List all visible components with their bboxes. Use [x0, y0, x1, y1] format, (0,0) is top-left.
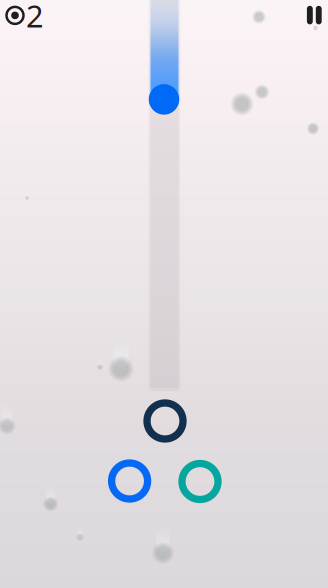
button[interactable]: Pause [299, 0, 328, 31]
staticText: 2 [26, 0, 44, 36]
